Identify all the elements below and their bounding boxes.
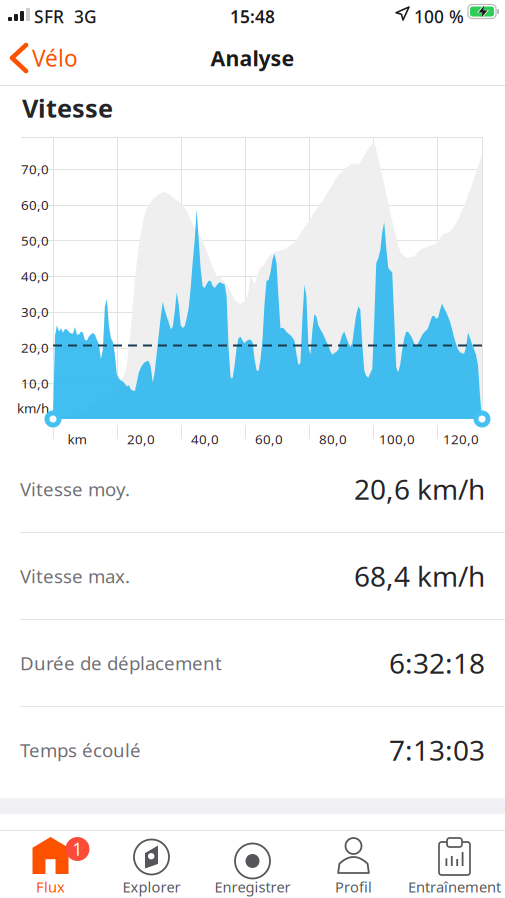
- staticText: Vitesse moy.: [20, 477, 130, 501]
- staticText: Analyse: [210, 44, 294, 72]
- staticText: 20,0: [127, 430, 155, 448]
- button[interactable]: Enregistrer: [202, 831, 303, 898]
- staticText: 120,0: [443, 430, 479, 448]
- staticText: Profil: [335, 877, 372, 896]
- staticText: 70,0: [21, 160, 49, 178]
- staticText: Vitesse: [22, 91, 113, 125]
- staticText: Vélo: [32, 43, 78, 73]
- staticText: 40,0: [191, 430, 219, 448]
- staticText: 50,0: [21, 232, 49, 249]
- staticText: Explorer: [122, 877, 180, 896]
- button[interactable]: Entraînement: [404, 831, 505, 898]
- staticText: 10,0: [21, 374, 49, 392]
- staticText: km: [67, 430, 86, 448]
- button[interactable]: Vélo: [0, 33, 90, 83]
- staticText: Entraînement: [408, 877, 501, 896]
- staticText: 100,0: [379, 430, 415, 448]
- staticText: Flux: [36, 877, 65, 896]
- staticText: 60,0: [255, 430, 283, 448]
- staticText: 100 %: [414, 5, 464, 28]
- button[interactable]: Profil: [303, 831, 404, 898]
- staticText: SFR 3G: [34, 5, 97, 28]
- staticText: Vitesse max.: [20, 564, 130, 588]
- staticText: Durée de déplacement: [20, 651, 222, 675]
- staticText: Enregistrer: [214, 877, 290, 896]
- staticText: 6:32:18: [389, 644, 485, 682]
- staticText: 20,6 km/h: [354, 470, 485, 508]
- button[interactable]: Explorer: [101, 831, 202, 898]
- staticText: 1: [72, 837, 82, 860]
- staticText: 40,0: [21, 267, 49, 285]
- staticText: 20,0: [21, 339, 49, 356]
- staticText: 30,0: [21, 303, 49, 321]
- staticText: Temps écoulé: [20, 738, 141, 762]
- staticText: 68,4 km/h: [354, 557, 485, 595]
- staticText: 80,0: [319, 430, 347, 448]
- staticText: km/h: [17, 399, 49, 417]
- staticText: 15:48: [230, 5, 275, 28]
- staticText: 60,0: [21, 196, 49, 214]
- staticText: 7:13:03: [389, 731, 485, 769]
- button[interactable]: 1: [0, 831, 101, 898]
